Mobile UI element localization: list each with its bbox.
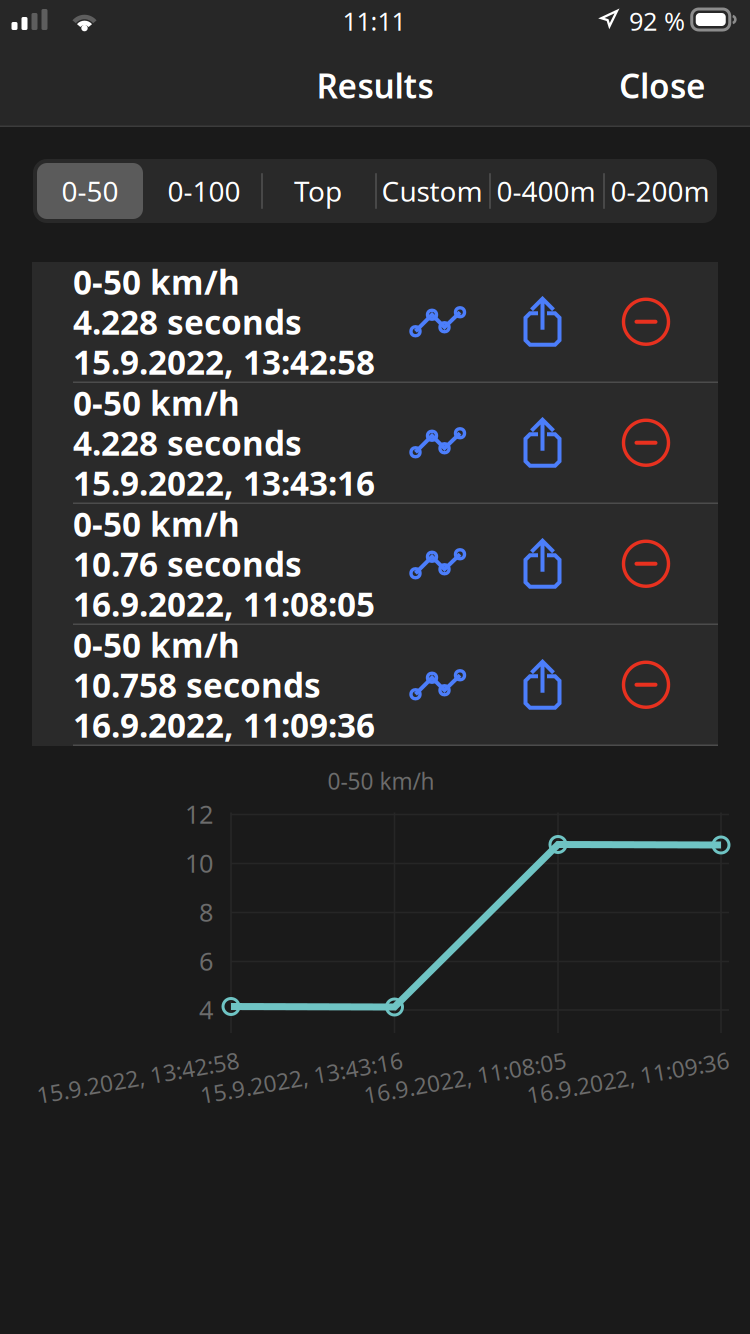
staticText: 8: [199, 895, 213, 929]
button[interactable]: Share: [498, 514, 586, 614]
staticText: 0-100: [167, 172, 240, 210]
staticText: 4: [199, 993, 213, 1026]
button[interactable]: Share: [498, 272, 586, 372]
button[interactable]: Delete: [602, 514, 690, 614]
button[interactable]: 0-200m: [603, 159, 717, 223]
staticText: 0-50 km/h: [73, 381, 240, 425]
button[interactable]: Close: [605, 53, 720, 118]
staticText: 16.9.2022, 11:09:36: [73, 703, 375, 747]
staticText: 10.76 seconds: [73, 542, 302, 586]
button[interactable]: Share: [498, 393, 586, 493]
staticText: 92 %: [629, 4, 685, 38]
button[interactable]: Delete: [602, 393, 690, 493]
staticText: 0-400m: [496, 172, 595, 210]
staticText: 15.9.2022, 13:42:58: [73, 340, 375, 384]
button[interactable]: Show chart: [393, 635, 481, 735]
staticText: 0-50 km/h: [73, 623, 240, 667]
button[interactable]: Show chart: [393, 393, 481, 493]
button[interactable]: Share: [498, 635, 586, 735]
staticText: 10.758 seconds: [73, 663, 321, 707]
button[interactable]: Custom: [375, 159, 489, 223]
staticText: Close: [619, 63, 706, 108]
staticText: 15.9.2022, 13:43:16: [199, 1062, 404, 1092]
staticText: 0-50 km/h: [73, 502, 240, 546]
button[interactable]: Delete: [602, 635, 690, 735]
staticText: 16.9.2022, 11:08:05: [362, 1062, 567, 1092]
button[interactable]: Show chart: [393, 272, 481, 372]
button[interactable]: 0-50: [33, 159, 147, 223]
staticText: 0-50: [61, 172, 118, 210]
staticText: 16.9.2022, 11:08:05: [73, 582, 375, 626]
staticText: 0-200m: [610, 172, 709, 210]
staticText: 6: [199, 944, 213, 978]
button[interactable]: 0-400m: [489, 159, 603, 223]
staticText: 15.9.2022, 13:42:58: [35, 1062, 240, 1092]
staticText: 4.228 seconds: [73, 300, 302, 344]
staticText: 11:11: [342, 4, 405, 38]
button[interactable]: Top: [261, 159, 375, 223]
staticText: 16.9.2022, 11:09:36: [525, 1062, 730, 1092]
button[interactable]: Show chart: [393, 514, 481, 614]
staticText: Top: [294, 172, 342, 210]
staticText: 10: [185, 846, 213, 880]
staticText: 4.228 seconds: [73, 421, 302, 465]
staticText: 15.9.2022, 13:43:16: [73, 461, 375, 505]
staticText: 0-50 km/h: [327, 766, 434, 796]
staticText: 12: [185, 797, 213, 831]
staticText: Custom: [381, 172, 482, 210]
staticText: 0-50 km/h: [73, 260, 240, 304]
button[interactable]: Delete: [602, 272, 690, 372]
staticText: Results: [316, 63, 433, 108]
button[interactable]: 0-100: [147, 159, 261, 223]
